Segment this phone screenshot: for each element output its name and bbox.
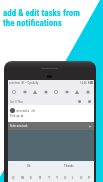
button[interactable]: E	[27, 171, 36, 182]
button[interactable]: P	[85, 171, 93, 182]
button[interactable]: R	[36, 171, 45, 182]
staticText: Q	[12, 175, 15, 180]
staticText: Pick up	[10, 114, 20, 118]
staticText: ·	[91, 164, 92, 168]
button[interactable]: Quick setting	[22, 89, 28, 95]
staticText: U	[64, 175, 67, 180]
staticText: O	[80, 175, 83, 180]
button[interactable]: Quick setting	[43, 89, 49, 95]
staticText: Thanks	[64, 164, 74, 168]
other: Send	[89, 125, 92, 128]
button[interactable]: T	[45, 171, 53, 182]
button[interactable]: Q	[9, 171, 18, 182]
staticText: ·	[10, 164, 11, 168]
staticText: Sat 17 Nov	[10, 100, 23, 104]
button[interactable]: Quick setting	[32, 89, 38, 95]
staticText: add & edit tasks from the notifications	[3, 8, 80, 28]
button[interactable]: Quick setting	[74, 89, 80, 95]
button[interactable]: Quick setting	[53, 89, 59, 95]
staticText: Ok	[27, 164, 31, 168]
staticText: Y	[56, 175, 59, 180]
button[interactable]: Y	[53, 171, 61, 182]
button[interactable]: Quick setting	[64, 89, 70, 95]
button[interactable]: Enter new task	[10, 122, 92, 130]
staticText: I	[72, 175, 74, 180]
staticText: 14:46	[80, 81, 87, 85]
staticText: W	[21, 175, 25, 180]
staticText: microtasks · 2m ·	[16, 109, 37, 113]
button[interactable]: O	[77, 171, 85, 182]
staticText: T	[48, 175, 51, 180]
staticText: R	[39, 175, 42, 180]
button[interactable]: U	[61, 171, 69, 182]
staticText: E	[30, 175, 33, 180]
staticText: Enter new task	[10, 124, 28, 128]
button[interactable]: I	[69, 171, 77, 182]
button[interactable]: W	[18, 171, 27, 182]
button[interactable]: Quick setting	[85, 89, 91, 95]
staticText: P	[88, 175, 91, 180]
button[interactable]: Quick setting	[11, 89, 17, 95]
staticText: vodafone UK — Cyta4u4y	[9, 81, 39, 85]
